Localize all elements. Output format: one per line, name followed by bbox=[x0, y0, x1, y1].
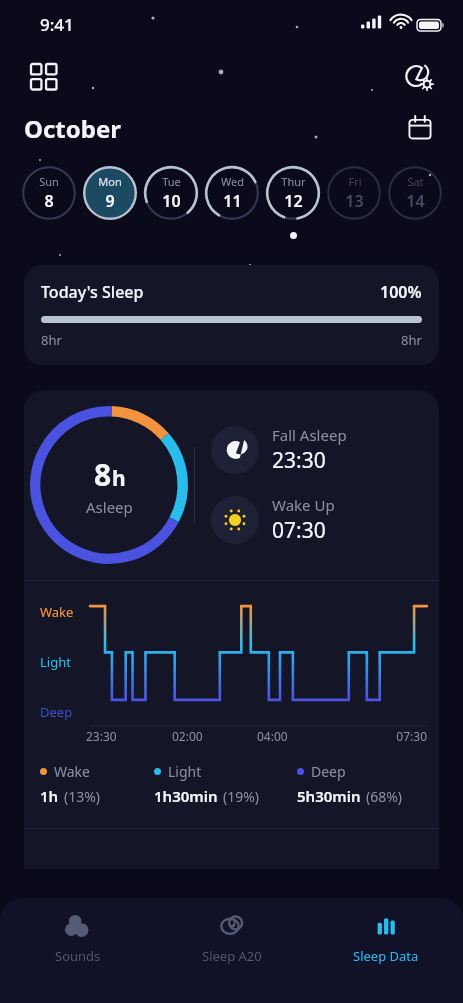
staticText: Deep bbox=[40, 703, 73, 721]
staticText: Wake bbox=[54, 762, 90, 781]
staticText: Sun bbox=[39, 174, 59, 189]
staticText: 8 bbox=[94, 454, 112, 495]
staticText: 12 bbox=[284, 190, 303, 212]
staticText: Wake bbox=[40, 603, 74, 621]
staticText: h bbox=[112, 464, 126, 493]
staticText: Asleep bbox=[86, 497, 133, 517]
staticText: 04:00 bbox=[257, 728, 342, 744]
staticText: 11 bbox=[223, 190, 242, 212]
staticText: 02:00 bbox=[172, 728, 257, 744]
staticText: 9 bbox=[105, 190, 115, 212]
button[interactable]: Sleep A20 bbox=[155, 912, 309, 1003]
button[interactable]: Calendar bbox=[401, 109, 439, 147]
staticText: 1h30min bbox=[154, 786, 218, 806]
button[interactable]: Wake Up bbox=[211, 495, 431, 545]
staticText: Deep bbox=[311, 762, 346, 781]
staticText: 5h30min bbox=[297, 786, 361, 806]
staticText: 1h bbox=[40, 786, 59, 806]
staticText: 14 bbox=[406, 190, 425, 212]
button[interactable]: Today's Sleep bbox=[24, 265, 439, 365]
staticText: Wed bbox=[221, 174, 244, 189]
staticText: Thur bbox=[281, 174, 306, 189]
staticText: Sleep Data bbox=[353, 947, 419, 965]
staticText: 8hr bbox=[401, 331, 422, 349]
button[interactable]: Sleep settings bbox=[397, 56, 439, 98]
staticText: 13 bbox=[345, 190, 364, 212]
staticText: (19%) bbox=[223, 787, 260, 806]
staticText: Light bbox=[40, 653, 71, 671]
button[interactable]: Tue bbox=[143, 164, 199, 222]
button[interactable]: Deep bbox=[297, 762, 423, 806]
button[interactable]: Wed bbox=[204, 164, 260, 222]
button[interactable]: Sounds bbox=[0, 912, 155, 1003]
button[interactable]: Sun bbox=[20, 164, 77, 222]
button[interactable]: Fri bbox=[326, 164, 382, 222]
staticText: 100% bbox=[380, 281, 422, 303]
staticText: Light bbox=[168, 762, 202, 781]
staticText: (68%) bbox=[366, 787, 403, 806]
button[interactable]: Thur bbox=[265, 164, 321, 222]
button[interactable]: Sleep Data bbox=[309, 912, 463, 1003]
staticText: (13%) bbox=[64, 787, 101, 806]
staticText: 23:30 bbox=[272, 446, 326, 475]
staticText: Mon bbox=[98, 174, 122, 189]
staticText: 07:30 bbox=[272, 516, 326, 545]
staticText: Sat bbox=[407, 174, 424, 189]
button[interactable]: Mon bbox=[82, 164, 138, 222]
staticText: Sleep A20 bbox=[202, 947, 262, 965]
staticText: 9:41 bbox=[40, 13, 74, 36]
staticText: 8 bbox=[44, 190, 54, 212]
button[interactable]: Sat bbox=[387, 164, 443, 222]
staticText: 10 bbox=[162, 190, 181, 212]
staticText: 23:30 bbox=[86, 728, 172, 744]
staticText: Today's Sleep bbox=[41, 281, 144, 303]
staticText: Sounds bbox=[55, 947, 101, 965]
staticText: Tue bbox=[162, 174, 181, 189]
staticText: 07:30 bbox=[342, 728, 427, 744]
staticText: 8hr bbox=[41, 331, 62, 349]
staticText: Wake Up bbox=[272, 495, 335, 515]
button[interactable]: Menu bbox=[24, 57, 64, 97]
staticText: October bbox=[24, 112, 122, 145]
staticText: Fri bbox=[348, 174, 362, 189]
staticText: Fall Asleep bbox=[272, 425, 347, 445]
button[interactable]: Fall Asleep bbox=[211, 425, 431, 475]
button[interactable]: Wake bbox=[40, 762, 154, 806]
button[interactable]: Light bbox=[154, 762, 297, 806]
